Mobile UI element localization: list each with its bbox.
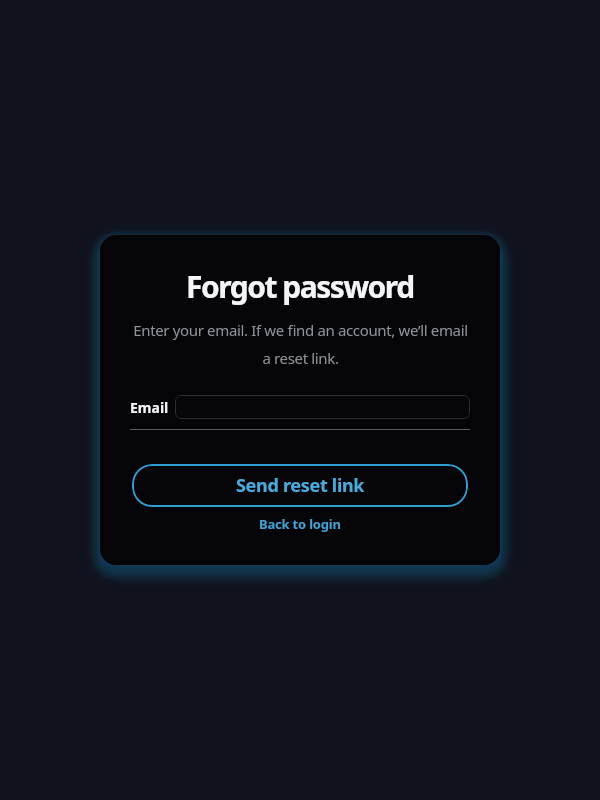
staticText: Back to login: [259, 515, 341, 533]
staticText: Enter your email. If we find an account,…: [133, 320, 468, 368]
staticText: Send reset link: [236, 473, 365, 498]
button[interactable]: Back to login: [259, 515, 341, 533]
staticText: Email: [130, 398, 169, 417]
button[interactable]: [175, 395, 470, 419]
staticText: Forgot password: [186, 266, 414, 307]
button[interactable]: Send reset link: [132, 464, 468, 507]
